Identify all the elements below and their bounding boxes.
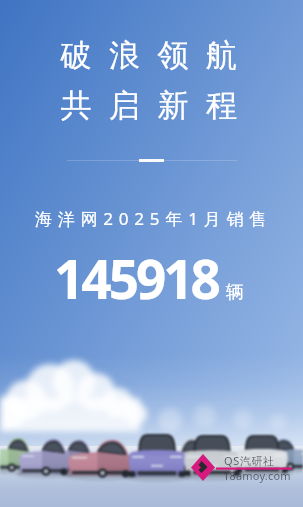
staticText: 145918 bbox=[54, 242, 218, 314]
staticText: 共启新程 bbox=[6, 86, 303, 125]
staticText: 辆 bbox=[226, 281, 244, 304]
staticText: 海洋网2025年1月销售 bbox=[2, 207, 303, 230]
staticText: 18amoy.com bbox=[223, 468, 291, 483]
button[interactable]: QS汽研社 bbox=[0, 0, 303, 507]
staticText: 破浪领航 bbox=[6, 36, 303, 75]
staticText: QS汽研社 bbox=[224, 453, 275, 468]
